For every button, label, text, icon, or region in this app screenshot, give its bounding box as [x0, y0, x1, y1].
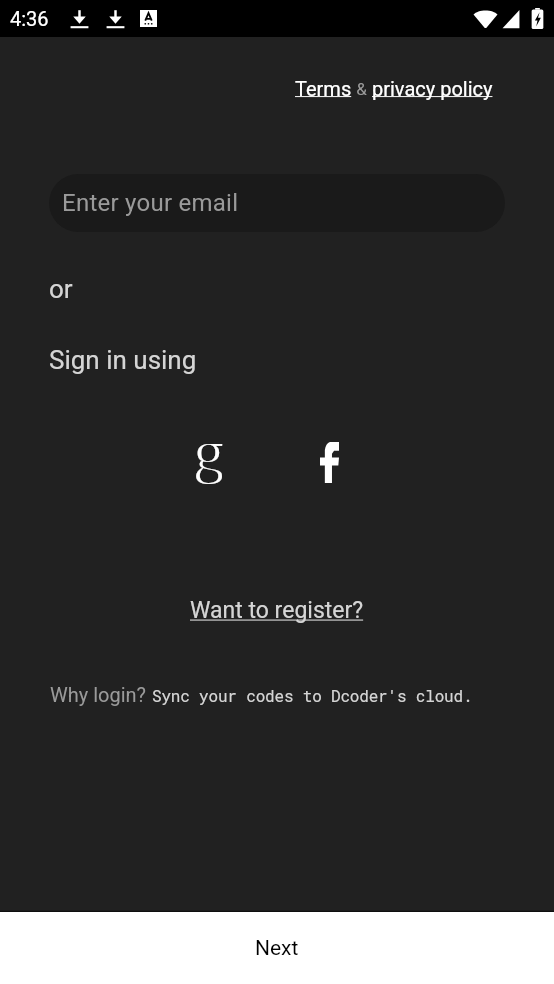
staticText: Sync your codes to Dcoder's cloud. [152, 685, 473, 706]
button[interactable]: Enter your email [49, 174, 505, 232]
staticText: Sign in using [49, 345, 197, 375]
staticText: 4:36 [10, 7, 49, 30]
staticText: Next [255, 936, 299, 961]
button[interactable]: Want to register? [190, 597, 364, 624]
button[interactable]: Sign in with Facebook [293, 419, 365, 499]
staticText: & [352, 79, 372, 99]
button[interactable]: Terms [295, 77, 352, 100]
staticText: Enter your email [62, 189, 239, 217]
button[interactable]: privacy policy [372, 77, 493, 100]
staticText: Why login? [50, 683, 152, 706]
button[interactable]: Sign in with Google [173, 419, 245, 499]
staticText: or [49, 274, 73, 304]
staticText: g [194, 420, 225, 484]
button[interactable]: Next [0, 912, 554, 984]
